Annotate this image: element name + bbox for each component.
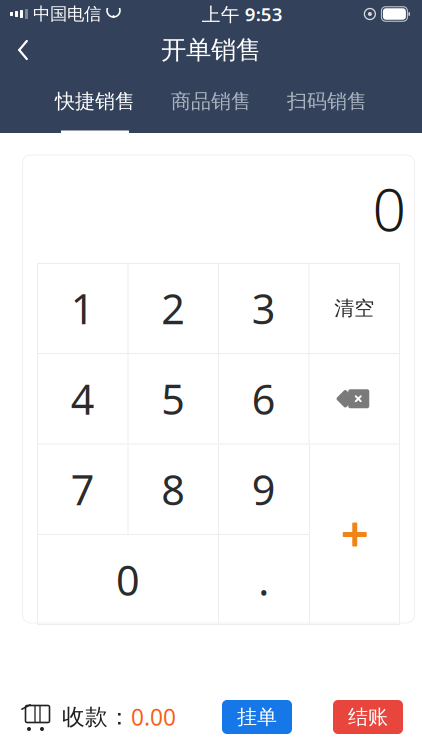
staticText: 1 [71,281,95,336]
staticText: 9 [252,462,276,517]
button[interactable]: 清空 [309,263,399,353]
staticText: 4 [71,371,95,426]
staticText: 开单销售 [161,34,261,65]
staticText: 上午 9:53 [202,2,283,26]
staticText: 挂单 [237,705,277,729]
staticText: 0.00 [131,702,176,732]
staticText: 6 [252,371,276,426]
button[interactable]: 0 [38,535,218,624]
staticText: 7 [71,462,95,517]
button[interactable]: 8 [128,444,218,534]
staticText: 快捷销售 [55,89,135,114]
button[interactable]: 结账 [333,700,403,734]
button[interactable]: 6 [219,354,308,443]
staticText: 结账 [348,705,388,729]
staticText: . [258,552,269,607]
staticText: 收款： [62,703,131,731]
button[interactable]: 4 [38,354,127,443]
staticText: 清空 [334,296,374,321]
button[interactable]: 5 [128,354,218,443]
staticText: 5 [161,371,185,426]
button[interactable]: . [219,535,308,624]
button[interactable]: 扫码销售 [284,72,370,133]
button[interactable]: 快捷销售 [52,72,138,133]
staticText: 扫码销售 [287,89,367,114]
button[interactable]: 商品销售 [168,72,254,133]
button[interactable]: 9 [219,444,308,534]
staticText: 中国电信 [33,3,101,25]
staticText: 3 [252,281,276,336]
button[interactable]: 返回 [0,28,46,72]
button[interactable]: 2 [128,263,218,353]
staticText: 0 [116,552,140,607]
button[interactable]: 7 [38,444,127,534]
staticText: 商品销售 [171,89,251,114]
button[interactable]: 添加 [310,444,399,624]
staticText: 2 [161,281,185,336]
staticText: 8 [161,462,185,517]
button[interactable]: 1 [38,263,127,353]
button[interactable]: 3 [219,263,308,353]
button[interactable]: 挂单 [222,700,292,734]
staticText: 0 [372,169,405,247]
button[interactable]: 退格 [309,354,399,443]
